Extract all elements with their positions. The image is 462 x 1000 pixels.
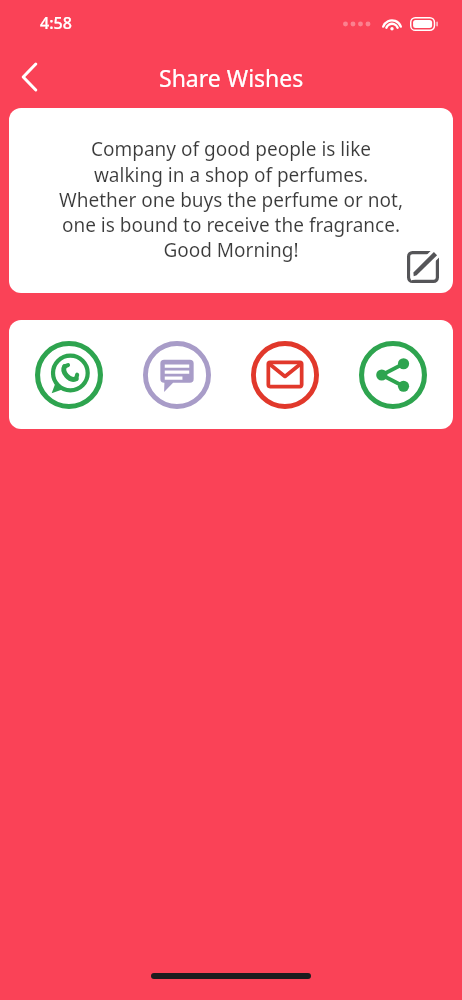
button[interactable]: Company of good people is like walking i… [9, 108, 453, 293]
button[interactable]: Edit [403, 247, 443, 287]
staticText: Company of good people is like walking i… [9, 136, 453, 262]
button[interactable]: Email [249, 339, 321, 411]
button[interactable]: WhatsApp [33, 339, 105, 411]
button[interactable]: Back [6, 54, 52, 100]
button[interactable]: Message [141, 339, 213, 411]
button[interactable]: Share [357, 339, 429, 411]
staticText: Share Wishes [159, 62, 304, 93]
staticText: 4:58 [40, 12, 72, 34]
